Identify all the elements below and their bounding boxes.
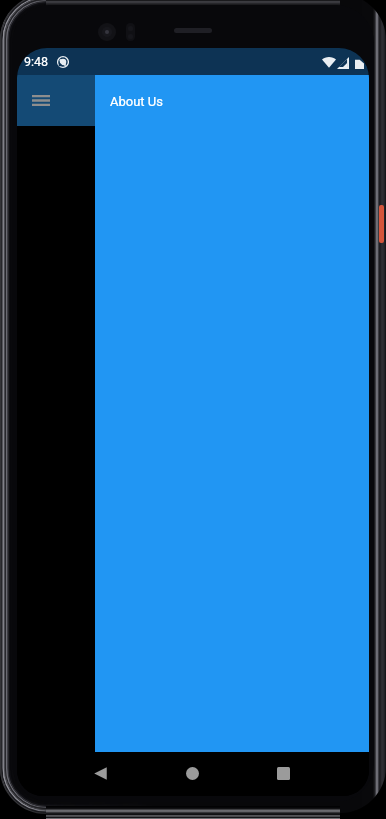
button[interactable]: Home <box>179 760 206 787</box>
staticText: 9:48 <box>24 54 49 69</box>
button[interactable]: Open navigation drawer <box>17 77 64 124</box>
button[interactable]: Recent apps <box>270 760 297 787</box>
staticText: About Us <box>110 94 163 109</box>
button[interactable]: Back <box>87 760 114 787</box>
